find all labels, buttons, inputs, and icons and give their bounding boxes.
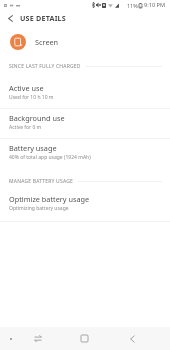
staticText: 9:10 PM	[144, 1, 166, 9]
staticText: Background use	[9, 113, 65, 123]
button[interactable]: Optimize battery usage	[0, 190, 170, 222]
staticText: Used for 10 h 10 m	[9, 94, 54, 101]
button[interactable]: Back	[120, 327, 144, 350]
staticText: Active for 0 m	[9, 124, 42, 131]
button[interactable]: Recent apps	[26, 327, 50, 350]
staticText: USE DETAILS	[20, 13, 66, 23]
staticText: MANAGE BATTERY USAGE	[9, 178, 74, 185]
staticText: Optimize battery usage	[9, 194, 90, 204]
button[interactable]: Navigate up	[0, 13, 20, 24]
staticText: SINCE LAST FULLY CHARGED	[9, 63, 81, 70]
staticText: Battery usage	[9, 143, 57, 153]
button[interactable]: Home	[72, 327, 97, 350]
staticText: Screen	[35, 37, 59, 47]
button[interactable]: Background use	[0, 109, 170, 139]
button[interactable]: Screen	[0, 30, 170, 53]
button[interactable]: Show button	[3, 327, 19, 350]
button[interactable]: Battery usage	[0, 139, 170, 169]
staticText: Optimizing battery usage	[9, 205, 69, 212]
button[interactable]: Active use	[0, 79, 170, 109]
staticText: 11%	[127, 2, 138, 9]
staticText: Active use	[9, 83, 44, 93]
staticText: 40% of total app usage (1924 mAh)	[9, 154, 91, 161]
